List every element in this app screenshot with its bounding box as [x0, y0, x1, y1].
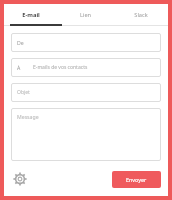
button[interactable]: Message	[11, 108, 161, 161]
button[interactable]: Slack	[113, 4, 168, 25]
button[interactable]: Lien	[58, 4, 113, 25]
staticText: E-mail	[22, 11, 40, 19]
button[interactable]: E-mail	[4, 4, 58, 25]
button[interactable]: Objet	[11, 83, 161, 102]
staticText: Objet	[17, 89, 30, 96]
staticText: Lien	[80, 11, 91, 19]
button[interactable]: Settings	[11, 170, 29, 188]
button[interactable]: Envoyer	[112, 171, 161, 188]
staticText: Envoyer	[126, 176, 147, 183]
staticText: E-mails de vos contacts	[33, 64, 88, 71]
staticText: Message	[17, 113, 39, 120]
button[interactable]: De	[11, 33, 161, 52]
staticText: De	[17, 39, 24, 46]
staticText: Slack	[134, 11, 148, 19]
staticText: À	[17, 64, 21, 71]
button[interactable]: À	[11, 58, 161, 77]
